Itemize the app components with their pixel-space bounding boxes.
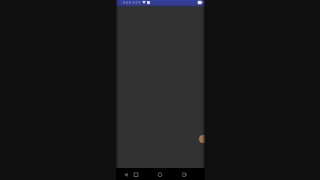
button[interactable]: Recents xyxy=(131,168,141,180)
button[interactable]: Screenshot xyxy=(180,168,190,180)
button[interactable]: Back xyxy=(121,168,131,180)
button[interactable]: Add xyxy=(199,135,205,143)
button[interactable]: Home xyxy=(155,168,165,180)
